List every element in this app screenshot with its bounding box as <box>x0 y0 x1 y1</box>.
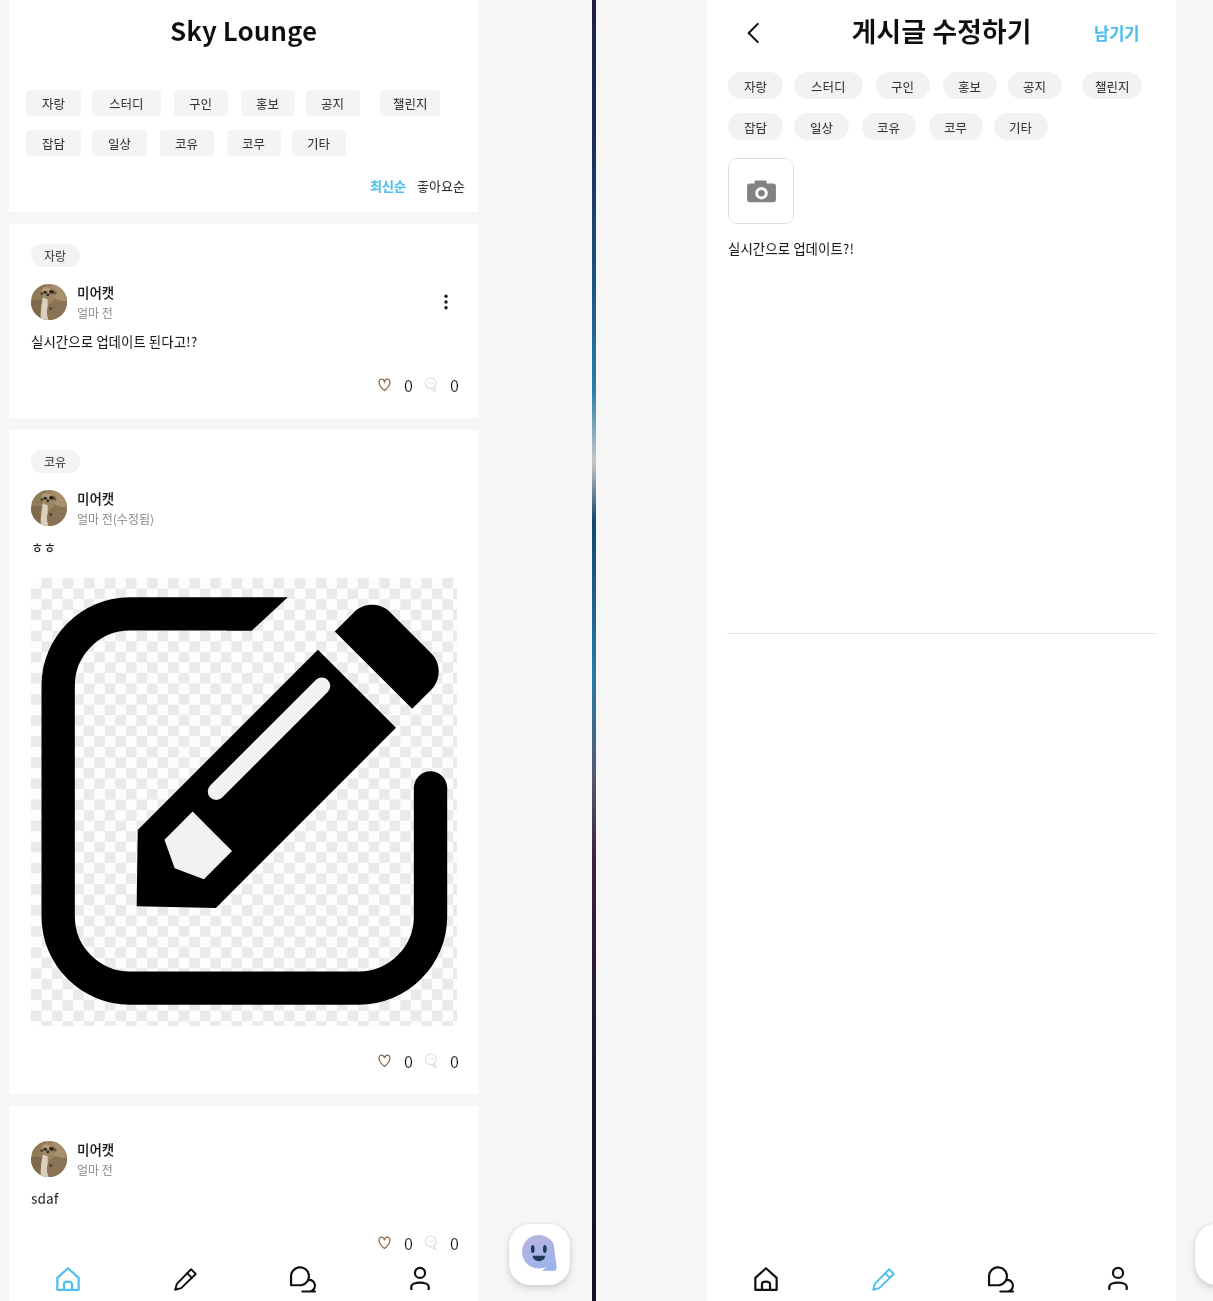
button[interactable]: 챌린지 <box>380 90 440 116</box>
staticText: 최신순 <box>370 176 406 195</box>
button[interactable]: 잡담 <box>728 113 783 140</box>
staticText: 자랑 <box>44 247 67 264</box>
staticText: 좋아요순 <box>417 176 465 195</box>
button[interactable]: 구인 <box>174 90 228 116</box>
button[interactable]: Like <box>377 1231 413 1254</box>
button[interactable]: Comments <box>424 1049 459 1072</box>
staticText: 코유 <box>877 118 901 136</box>
button[interactable]: Like <box>377 373 413 396</box>
staticText: 자랑 <box>744 77 768 95</box>
button[interactable]: Add photo <box>728 158 794 224</box>
staticText: 코무 <box>242 134 266 152</box>
button[interactable]: Chat <box>244 1251 361 1301</box>
staticText: 남기기 <box>1094 21 1140 45</box>
staticText: 스터디 <box>811 77 846 95</box>
staticText: 챌린지 <box>393 94 428 112</box>
button[interactable]: 미어캣 <box>9 1106 478 1276</box>
button[interactable]: 코유 <box>9 430 478 1094</box>
staticText: 게시글 수정하기 <box>707 11 1176 50</box>
staticText: 스터디 <box>109 94 144 112</box>
staticText: 0 <box>450 373 459 396</box>
button[interactable]: 공지 <box>306 90 360 116</box>
button[interactable]: Comments <box>424 1231 459 1254</box>
button[interactable]: 코유 <box>862 113 916 140</box>
staticText: 구인 <box>891 77 915 95</box>
button[interactable]: 홍보 <box>241 90 295 116</box>
staticText: 코무 <box>944 118 968 136</box>
button[interactable]: 자랑 <box>26 90 81 116</box>
staticText: Sky Lounge <box>9 11 478 49</box>
button[interactable]: Back <box>738 18 768 48</box>
staticText: 공지 <box>321 94 345 112</box>
staticText: 미어캣 <box>77 1139 115 1159</box>
staticText: 챌린지 <box>1095 77 1130 95</box>
staticText: 일상 <box>108 134 132 152</box>
staticText: ㅎㅎ <box>31 537 56 557</box>
staticText: 자랑 <box>42 94 66 112</box>
button[interactable]: 스터디 <box>92 90 161 116</box>
button[interactable]: Home <box>9 1251 127 1301</box>
button[interactable]: Profile <box>1059 1251 1176 1301</box>
staticText: 실시간으로 업데이트?! <box>728 238 855 258</box>
staticText: 기타 <box>307 134 331 152</box>
staticText: 0 <box>404 373 413 396</box>
staticText: 미어캣 <box>77 488 115 508</box>
staticText: 코유 <box>44 453 67 470</box>
staticText: 일상 <box>810 118 834 136</box>
button[interactable]: 자랑 <box>9 224 478 418</box>
button[interactable]: 남기기 <box>1094 21 1140 45</box>
button[interactable]: Write <box>825 1251 942 1301</box>
button[interactable]: 기타 <box>994 113 1048 140</box>
button[interactable]: Open chat <box>509 1224 570 1285</box>
button[interactable]: 스터디 <box>794 72 863 99</box>
button[interactable]: 홍보 <box>943 72 997 99</box>
staticText: 홍보 <box>958 77 982 95</box>
button[interactable]: 좋아요순 <box>417 176 465 195</box>
staticText: 0 <box>450 1231 459 1254</box>
button[interactable]: Like <box>377 1049 413 1072</box>
button[interactable]: Write <box>127 1251 244 1301</box>
button[interactable]: 일상 <box>794 113 849 140</box>
button[interactable]: Home <box>707 1251 825 1301</box>
button[interactable]: 챌린지 <box>1082 72 1142 99</box>
button[interactable]: 잡담 <box>26 130 81 156</box>
button[interactable]: More options <box>434 290 458 314</box>
staticText: 0 <box>404 1231 413 1254</box>
staticText: 0 <box>450 1049 459 1072</box>
staticText: 0 <box>404 1049 413 1072</box>
staticText: 실시간으로 업데이트 된다고!? <box>31 331 198 351</box>
button[interactable]: 공지 <box>1008 72 1062 99</box>
button[interactable]: Chat <box>942 1251 1059 1301</box>
staticText: 홍보 <box>256 94 280 112</box>
staticText: 얼마 전(수정됨) <box>77 510 155 527</box>
staticText: 기타 <box>1009 118 1033 136</box>
button[interactable]: 코무 <box>227 130 281 156</box>
staticText: 구인 <box>189 94 213 112</box>
button[interactable]: 기타 <box>292 130 346 156</box>
button[interactable]: 코무 <box>929 113 983 140</box>
staticText: 얼마 전 <box>77 304 113 321</box>
staticText: 잡담 <box>42 134 66 152</box>
staticText: sdaf <box>31 1188 59 1208</box>
button[interactable]: 자랑 <box>728 72 783 99</box>
button[interactable]: Profile <box>361 1251 478 1301</box>
staticText: 공지 <box>1023 77 1047 95</box>
button[interactable]: 최신순 <box>370 176 406 195</box>
button[interactable]: 일상 <box>92 130 147 156</box>
staticText: 코유 <box>175 134 199 152</box>
button[interactable]: 구인 <box>876 72 930 99</box>
button[interactable]: Comments <box>424 373 459 396</box>
button[interactable]: 코유 <box>160 130 214 156</box>
staticText: 미어캣 <box>77 282 115 302</box>
staticText: 잡담 <box>744 118 768 136</box>
staticText: 얼마 전 <box>77 1161 113 1178</box>
